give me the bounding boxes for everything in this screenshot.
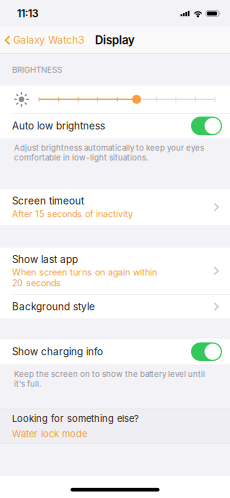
button[interactable]: Show last app: [0, 248, 230, 294]
staticText: When screen turns on again within 20 sec…: [12, 267, 157, 288]
button[interactable]: Auto low brightness: [0, 114, 230, 138]
button[interactable]: Galaxy Watch3: [0, 27, 88, 53]
staticText: Looking for something else?: [12, 413, 139, 424]
staticText: Display: [95, 33, 135, 47]
button[interactable]: Show charging info: [0, 339, 230, 364]
staticText: Show last app: [12, 253, 78, 265]
staticText: Background style: [12, 301, 95, 313]
staticText: 11:13: [17, 7, 38, 20]
button[interactable]: Water lock mode: [12, 428, 87, 439]
staticText: Water lock mode: [12, 428, 87, 439]
staticText: Adjust brightness automatically to keep …: [14, 143, 204, 162]
staticText: Screen timeout: [12, 195, 84, 207]
staticText: Keep the screen on to show the battery l…: [14, 369, 205, 389]
staticText: Galaxy Watch3: [13, 34, 84, 46]
button[interactable]: Background style: [0, 295, 230, 319]
staticText: BRIGHTNESS: [12, 65, 62, 75]
staticText: Auto low brightness: [12, 120, 105, 132]
button[interactable]: Screen timeout: [0, 189, 230, 225]
staticText: After 15 seconds of inactivity: [12, 208, 133, 219]
staticText: Show charging info: [12, 346, 103, 358]
